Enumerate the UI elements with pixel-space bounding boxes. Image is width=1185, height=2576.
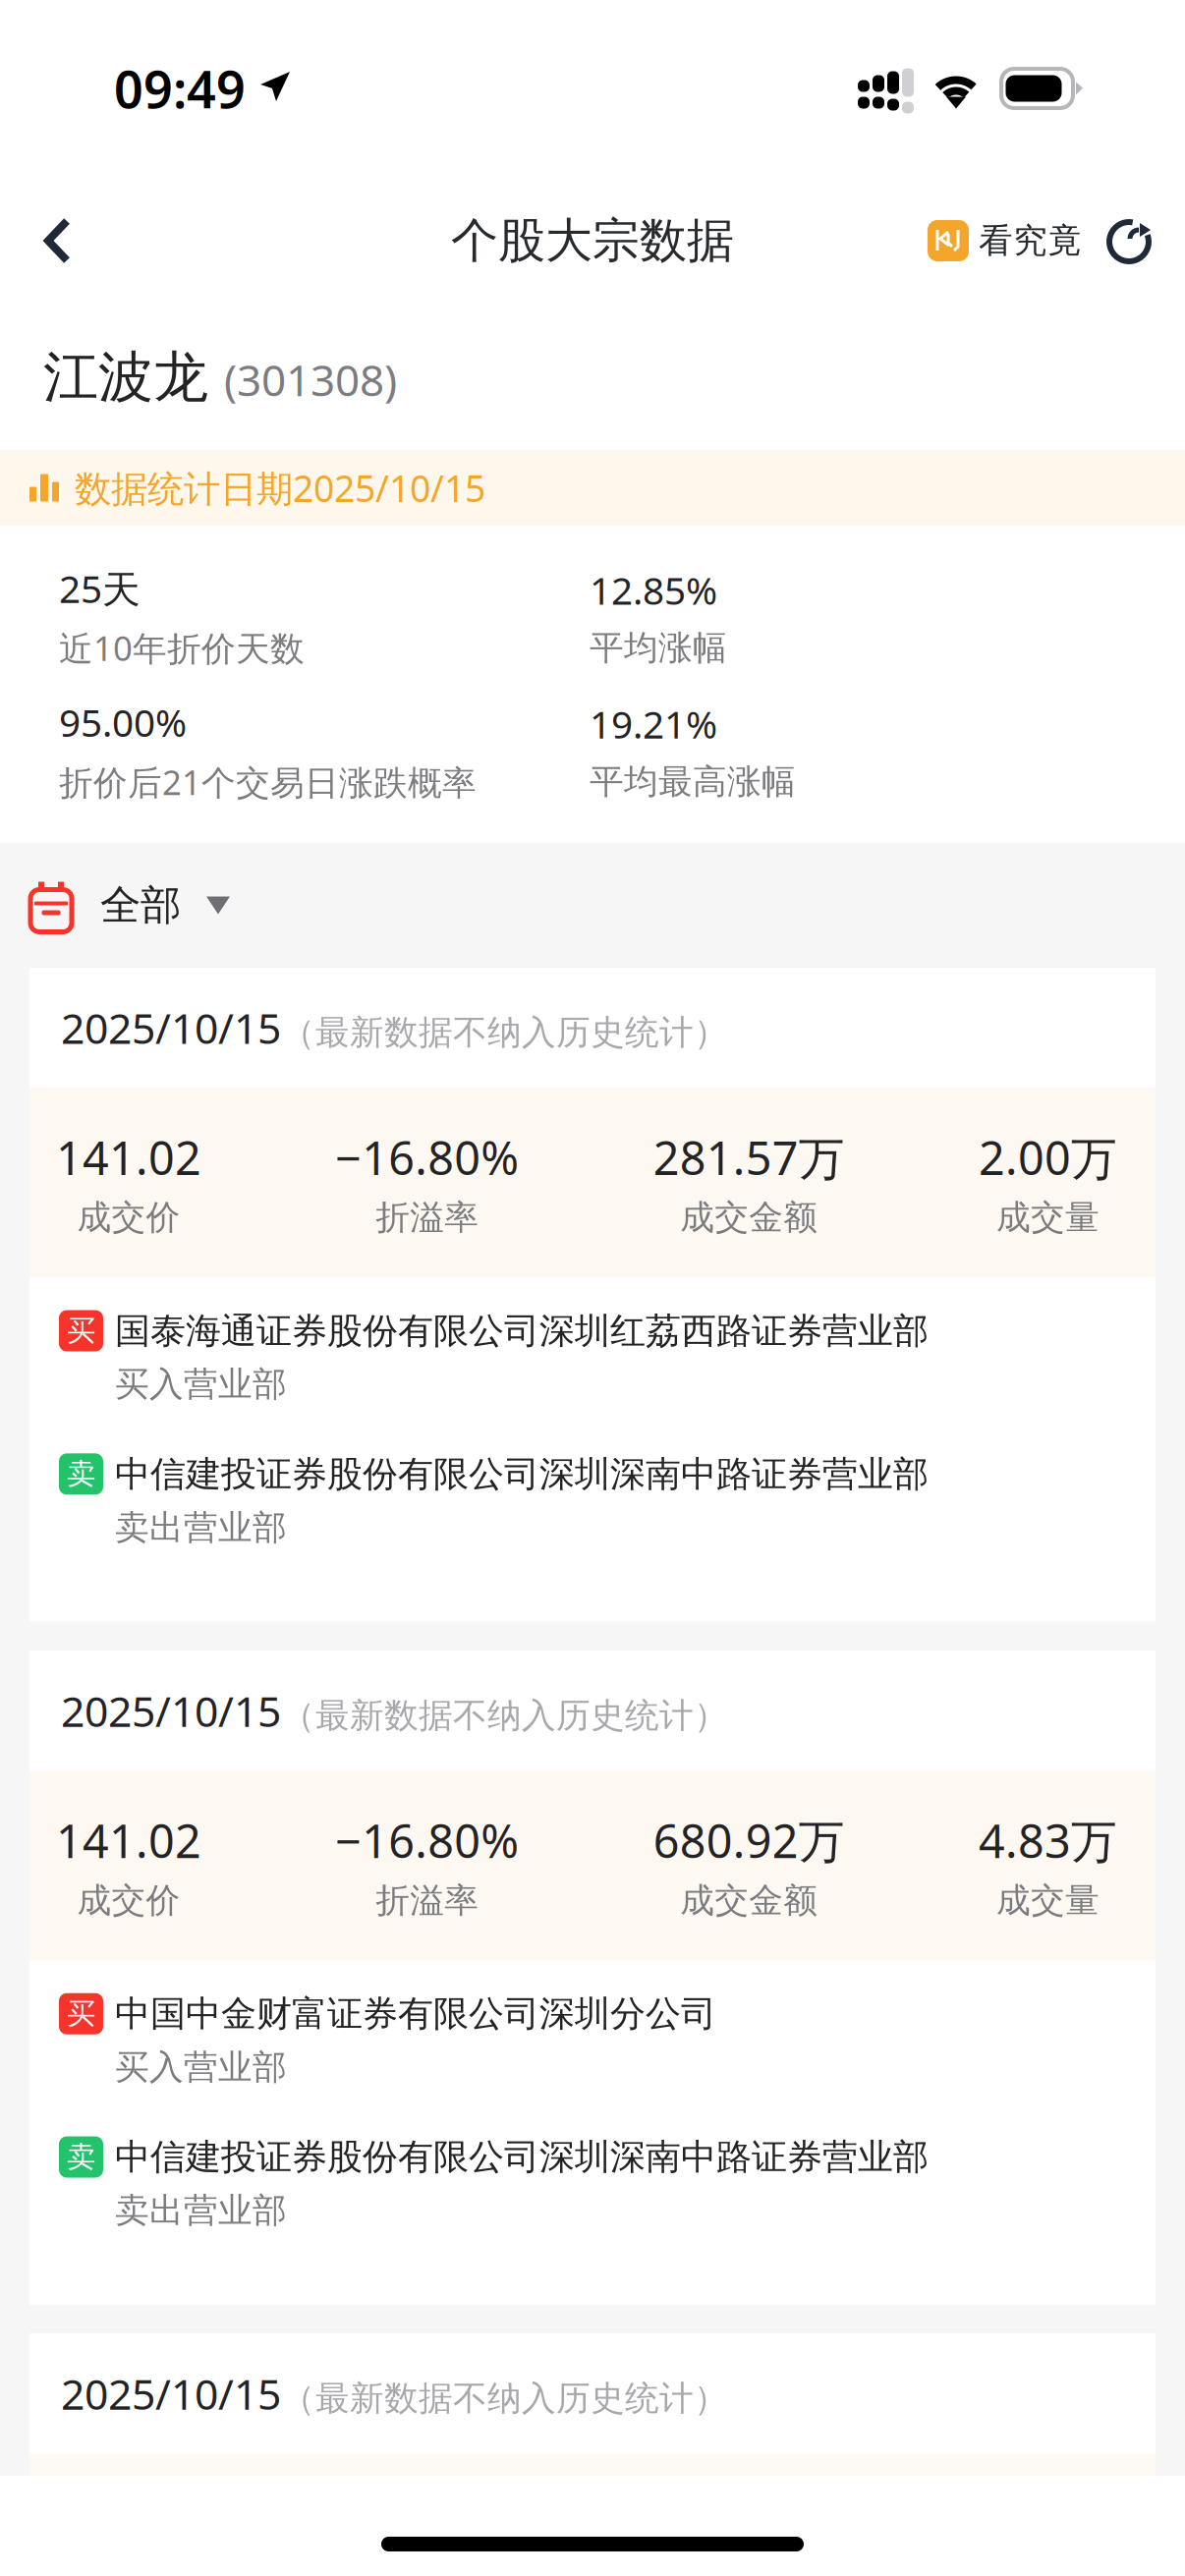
- staticText: 近10年折价天数: [59, 625, 305, 670]
- staticText: 12.85%: [590, 565, 717, 615]
- staticText: −16.80%: [335, 1127, 519, 1188]
- button[interactable]: 看究竟: [928, 220, 1100, 262]
- button[interactable]: 买: [59, 1992, 1126, 2088]
- staticText: 数据统计日期2025/10/15: [75, 463, 485, 512]
- staticText: 25天: [59, 563, 141, 613]
- staticText: 成交金额: [680, 1197, 818, 1238]
- staticText: 成交量: [996, 1197, 1100, 1238]
- staticText: 看究竟: [979, 220, 1082, 262]
- staticText: 全部: [100, 880, 181, 930]
- button[interactable]: 返回: [24, 187, 91, 295]
- staticText: 19.21%: [590, 699, 717, 749]
- staticText: 卖出营业部: [115, 2190, 287, 2231]
- staticText: 买: [67, 1313, 95, 1348]
- staticText: 折价后21个交易日涨跌概率: [59, 759, 477, 804]
- staticText: （最新数据不纳入历史统计）: [281, 1695, 728, 1736]
- staticText: 141.02: [56, 1810, 201, 1871]
- staticText: 4.83万: [979, 1810, 1117, 1871]
- staticText: 买入营业部: [115, 2046, 287, 2088]
- button[interactable]: 卖: [59, 2135, 1126, 2231]
- staticText: 09:49: [114, 55, 246, 122]
- staticText: 2025/10/15: [61, 1683, 281, 1738]
- staticText: 2025/10/15: [61, 1000, 281, 1056]
- staticText: 折溢率: [376, 1880, 479, 1921]
- staticText: 买: [67, 1996, 95, 2031]
- staticText: 卖: [67, 1456, 95, 1492]
- staticText: 卖: [67, 2139, 95, 2175]
- staticText: 成交量: [996, 1880, 1100, 1921]
- staticText: −16.80%: [335, 1810, 519, 1871]
- staticText: 成交价: [77, 1880, 180, 1921]
- button[interactable]: 刷新: [1100, 192, 1159, 290]
- staticText: 卖出营业部: [115, 1507, 287, 1549]
- staticText: 680.92万: [653, 1810, 845, 1871]
- staticText: 成交价: [77, 1197, 180, 1238]
- staticText: 中国中金财富证券有限公司深圳分公司: [115, 1992, 716, 2036]
- staticText: 平均涨幅: [590, 627, 727, 669]
- button[interactable]: 卖: [59, 1452, 1126, 1549]
- button[interactable]: 买: [59, 1309, 1126, 1405]
- staticText: （最新数据不纳入历史统计）: [281, 2378, 728, 2419]
- staticText: 平均最高涨幅: [590, 761, 796, 803]
- staticText: 中信建投证券股份有限公司深圳深南中路证券营业部: [115, 2135, 929, 2179]
- staticText: −16.80%: [335, 2493, 519, 2554]
- staticText: 2025/10/15: [61, 2366, 281, 2421]
- staticText: (301308): [224, 351, 397, 408]
- staticText: 成交金额: [680, 1880, 818, 1921]
- staticText: 95.00%: [59, 697, 187, 747]
- staticText: 买入营业部: [115, 1363, 287, 1405]
- staticText: 123.45万: [653, 2493, 845, 2554]
- staticText: 141.02: [56, 1127, 201, 1188]
- staticText: 281.57万: [653, 1127, 845, 1188]
- staticText: （最新数据不纳入历史统计）: [281, 1012, 728, 1053]
- staticText: 国泰海通证券股份有限公司深圳红荔西路证券营业部: [115, 1309, 929, 1353]
- button[interactable]: 全部: [29, 879, 230, 932]
- staticText: 中信建投证券股份有限公司深圳深南中路证券营业部: [115, 1452, 929, 1496]
- staticText: 个股大宗数据: [451, 212, 734, 270]
- staticText: 2.00万: [979, 1127, 1117, 1188]
- staticText: 折溢率: [376, 1197, 479, 1238]
- staticText: 江波龙: [43, 343, 208, 411]
